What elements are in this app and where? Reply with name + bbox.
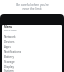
button[interactable]: Notifications xyxy=(4,49,61,54)
button[interactable]: Network xyxy=(4,34,61,39)
button[interactable]: Storage xyxy=(4,59,61,64)
button[interactable]: Battery xyxy=(4,54,61,59)
staticText: Menu xyxy=(4,25,13,29)
button[interactable]: Devices xyxy=(4,39,61,44)
staticText: Devices xyxy=(4,40,15,44)
staticText: Display xyxy=(4,65,14,69)
button[interactable]: System xyxy=(4,69,61,72)
button[interactable]: Display xyxy=(4,64,61,69)
staticText: Network xyxy=(4,35,16,39)
staticText: Storage xyxy=(4,60,15,64)
staticText: Be careful when you're xyxy=(16,3,49,7)
staticText: Apps xyxy=(4,45,11,49)
staticText: Battery xyxy=(4,55,14,59)
staticText: near the limit xyxy=(22,7,42,11)
staticText: Notifications xyxy=(4,50,22,54)
staticText: System xyxy=(4,69,14,72)
button[interactable]: Apps xyxy=(4,44,61,49)
staticText: Pick a topic xyxy=(4,28,17,31)
